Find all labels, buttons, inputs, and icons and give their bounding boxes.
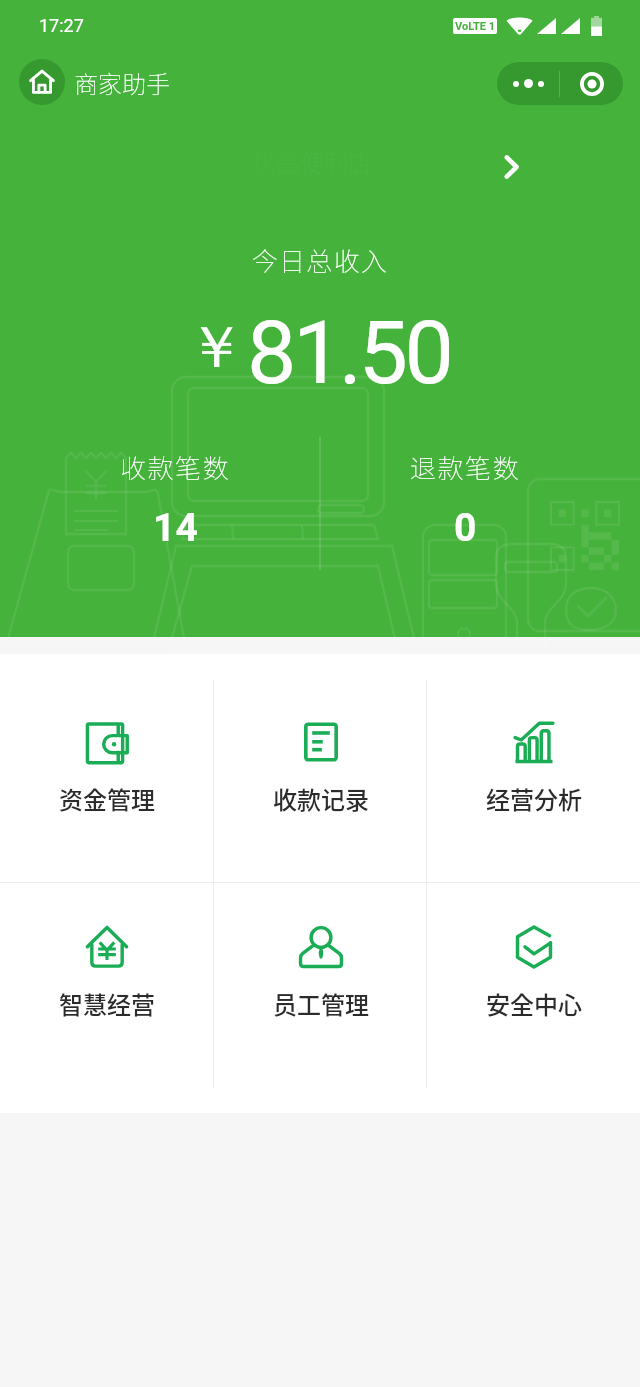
staticText: VoLTE 1 <box>455 20 496 33</box>
button[interactable]: Store detail <box>180 138 550 196</box>
staticText: 商家助手 <box>74 65 170 100</box>
button[interactable]: Close mini program <box>560 62 623 105</box>
staticText: 安全中心 <box>486 986 582 1021</box>
staticText: ￥ <box>187 311 245 384</box>
staticText: 14 <box>153 505 198 551</box>
button[interactable]: 安全中心 <box>427 883 640 1113</box>
button[interactable]: More options <box>497 62 559 105</box>
staticText: 81.50 <box>247 301 451 404</box>
button[interactable]: 经营分析 <box>427 654 640 882</box>
button[interactable]: 智慧经营 <box>0 883 214 1113</box>
staticText: 今日总收入 <box>0 241 640 279</box>
staticText: 资金管理 <box>59 781 155 816</box>
button[interactable]: 商家助手 <box>19 59 170 105</box>
staticText: 退款笔数 <box>410 448 521 486</box>
staticText: 智慧经营 <box>59 986 155 1021</box>
staticText: 员工管理 <box>273 986 369 1021</box>
staticText: 收款记录 <box>273 781 369 816</box>
staticText: 收款笔数 <box>120 448 231 486</box>
button[interactable]: 资金管理 <box>0 654 214 882</box>
button[interactable]: 员工管理 <box>214 883 427 1113</box>
staticText: 0 <box>454 505 477 551</box>
staticText: 经营分析 <box>486 781 582 816</box>
staticText: 17:27 <box>39 15 84 36</box>
button[interactable]: 收款记录 <box>214 654 427 882</box>
